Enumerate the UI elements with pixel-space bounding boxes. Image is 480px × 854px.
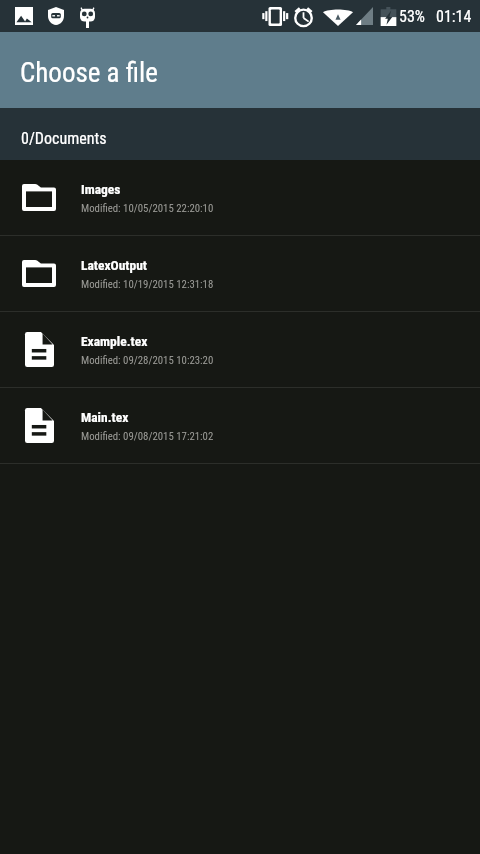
button[interactable]: Images	[0, 160, 480, 236]
staticText: Images	[81, 181, 121, 197]
other: Privacy guard	[48, 7, 64, 25]
other: CyanogenMod	[80, 7, 95, 28]
staticText: Modified: 09/28/2015 10:23:20	[81, 354, 214, 367]
staticText: 01:14	[436, 7, 472, 26]
button[interactable]: 0/Documents	[0, 108, 480, 160]
staticText: Modified: 09/08/2015 17:21:02	[81, 430, 214, 443]
button[interactable]: LatexOutput	[0, 236, 480, 312]
other: Screenshot captured	[15, 7, 33, 25]
staticText: Main.tex	[81, 409, 129, 425]
staticText: Example.tex	[81, 333, 148, 349]
staticText: LatexOutput	[81, 257, 147, 273]
staticText: Choose a file	[20, 57, 158, 89]
button[interactable]: Main.tex	[0, 388, 480, 464]
staticText: Modified: 10/05/2015 22:20:10	[81, 202, 214, 215]
staticText: Modified: 10/19/2015 12:31:18	[81, 278, 214, 291]
staticText: 53%	[399, 7, 425, 26]
button[interactable]: Example.tex	[0, 312, 480, 388]
staticText: 0/Documents	[21, 129, 107, 148]
